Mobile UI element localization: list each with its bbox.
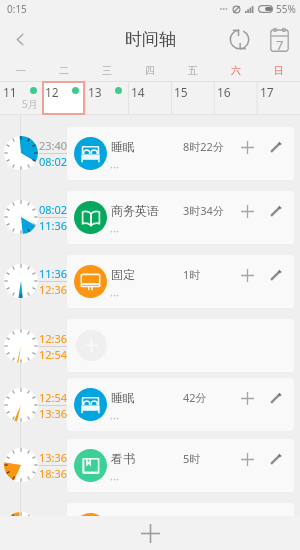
staticText: 23:40: [39, 138, 68, 153]
staticText: 三: [102, 64, 112, 77]
button[interactable]: Edit: [263, 447, 287, 471]
button[interactable]: 固定: [67, 503, 294, 550]
staticText: ···: [110, 223, 119, 238]
staticText: 二: [59, 64, 69, 77]
button[interactable]: Add: [235, 386, 259, 410]
staticText: 11: [3, 84, 17, 100]
staticText: 睡眠: [111, 390, 135, 405]
button[interactable]: Add entry: [0, 516, 300, 550]
button[interactable]: 11: [0, 81, 42, 115]
staticText: 08:02: [39, 154, 68, 169]
staticText: 3时34分: [183, 203, 224, 218]
staticText: ···: [110, 287, 119, 302]
button[interactable]: Add activity: [76, 330, 107, 361]
staticText: ···: [110, 410, 119, 425]
staticText: 11:36: [39, 266, 68, 281]
button[interactable]: Edit: [263, 135, 287, 159]
button[interactable]: 12: [42, 81, 85, 115]
button[interactable]: Add: [235, 447, 259, 471]
staticText: 13:36: [39, 450, 68, 465]
staticText: 四: [145, 64, 155, 77]
staticText: 固定: [111, 267, 135, 282]
button[interactable]: Refresh: [220, 18, 258, 60]
button[interactable]: Back: [0, 18, 40, 60]
staticText: 五: [188, 64, 198, 77]
staticText: 18:36: [39, 466, 68, 481]
staticText: 12:54: [39, 390, 68, 405]
button[interactable]: 17: [257, 81, 300, 115]
button[interactable]: Edit: [263, 263, 287, 287]
staticText: 12:54: [39, 347, 68, 362]
button[interactable]: 16: [214, 81, 257, 115]
staticText: 六: [231, 64, 241, 77]
staticText: 12:36: [39, 331, 68, 346]
staticText: 42分: [183, 390, 207, 405]
staticText: 0:15: [7, 2, 27, 16]
button[interactable]: 14: [128, 81, 171, 115]
staticText: 5月: [22, 97, 38, 111]
button[interactable]: Calendar: [258, 18, 300, 60]
staticText: ···: [110, 471, 119, 486]
button[interactable]: Edit: [263, 199, 287, 223]
staticText: 一: [16, 64, 26, 77]
staticText: 看书: [111, 451, 135, 466]
staticText: 8时22分: [183, 139, 224, 154]
button[interactable]: 固定: [67, 255, 294, 308]
staticText: 08:02: [39, 202, 68, 217]
staticText: 5时: [183, 451, 201, 466]
button[interactable]: Add: [235, 135, 259, 159]
staticText: 14: [131, 84, 145, 100]
staticText: 11:36: [39, 218, 68, 233]
button[interactable]: 睡眠: [67, 378, 294, 431]
staticText: 16: [217, 84, 231, 100]
staticText: 商务英语: [111, 203, 159, 218]
button[interactable]: Add: [235, 199, 259, 223]
staticText: 55%: [276, 2, 296, 16]
staticText: 13: [88, 84, 102, 100]
button[interactable]: Add: [235, 263, 259, 287]
button[interactable]: 商务英语: [67, 191, 294, 244]
button[interactable]: 13: [85, 81, 128, 115]
button[interactable]: 15: [171, 81, 214, 115]
staticText: 12: [45, 84, 59, 100]
staticText: 12:36: [39, 282, 68, 297]
staticText: ···: [110, 159, 119, 174]
staticText: 7: [276, 36, 284, 54]
staticText: 时间轴: [125, 29, 176, 50]
staticText: 1时: [183, 267, 201, 282]
button[interactable]: 看书: [67, 439, 294, 492]
staticText: 睡眠: [111, 139, 135, 154]
staticText: 日: [274, 64, 284, 77]
staticText: 17: [260, 84, 274, 100]
staticText: 13:36: [39, 406, 68, 421]
staticText: 15: [174, 84, 188, 100]
button[interactable]: 睡眠: [67, 127, 294, 180]
button[interactable]: Edit: [263, 386, 287, 410]
